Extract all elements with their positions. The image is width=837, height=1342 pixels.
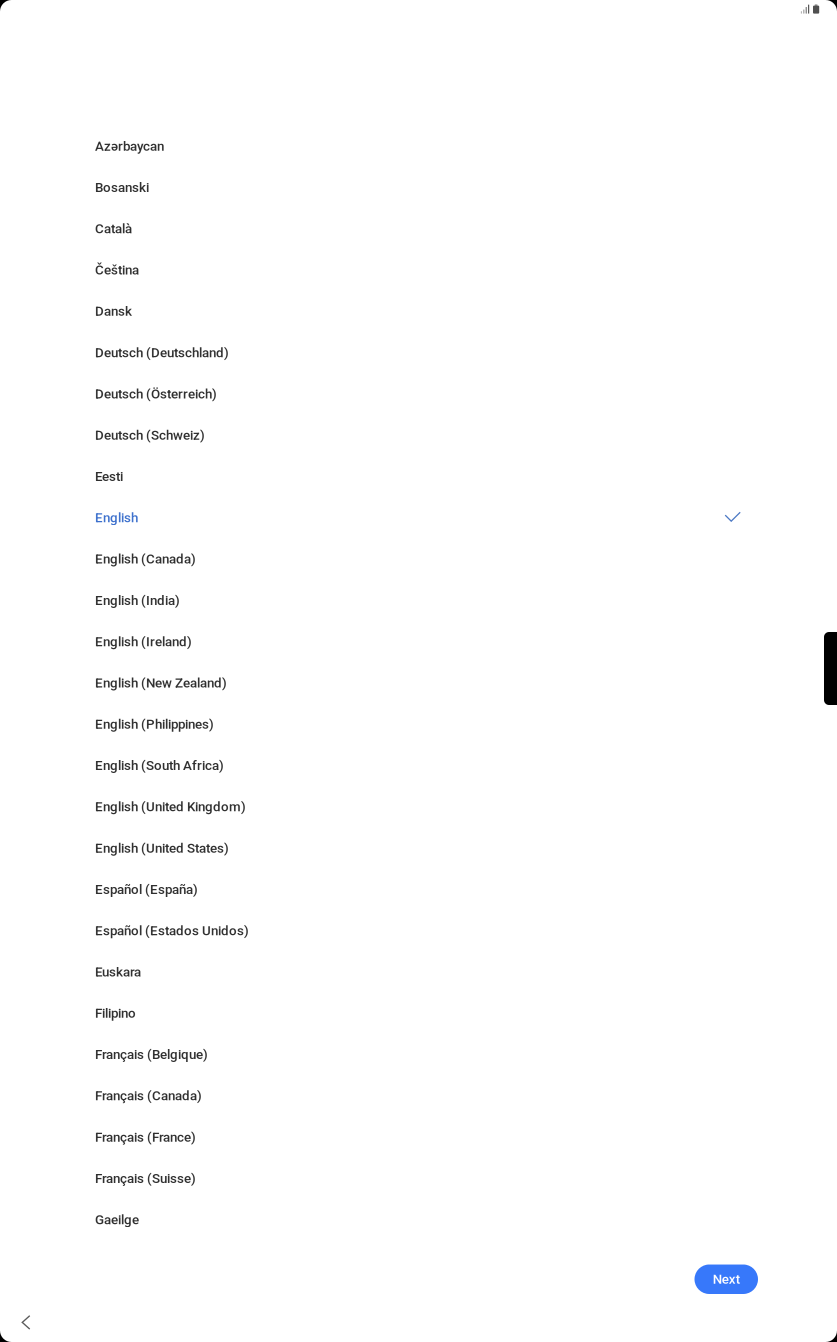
staticText: English (India) <box>95 592 180 608</box>
button[interactable]: Čeština <box>0 249 837 291</box>
button[interactable]: Español (Estados Unidos) <box>0 910 837 951</box>
button[interactable]: Euskara <box>0 951 837 993</box>
button[interactable]: Back <box>11 1308 41 1338</box>
staticText: Deutsch (Deutschland) <box>95 345 229 360</box>
staticText: Español (Estados Unidos) <box>95 923 249 938</box>
button[interactable]: Gaeilge <box>0 1199 837 1240</box>
button[interactable]: Eesti <box>0 456 837 497</box>
button[interactable]: English (South Africa) <box>0 745 837 786</box>
button[interactable]: Next <box>694 1264 758 1294</box>
button[interactable]: Dansk <box>0 291 837 332</box>
button[interactable]: Deutsch (Österreich) <box>0 373 837 414</box>
staticText: English (Philippines) <box>95 716 214 732</box>
staticText: Français (Canada) <box>95 1088 202 1104</box>
button[interactable]: Français (Belgique) <box>0 1034 837 1075</box>
button[interactable]: English (Canada) <box>0 538 837 580</box>
button[interactable]: Deutsch (Deutschland) <box>0 332 837 373</box>
button[interactable]: English (India) <box>0 580 837 621</box>
staticText: English (Ireland) <box>95 634 192 649</box>
staticText: Gaeilge <box>95 1212 139 1227</box>
staticText: English <box>95 510 138 525</box>
button[interactable]: English (Philippines) <box>0 704 837 745</box>
staticText: Euskara <box>95 964 141 980</box>
staticText: Filipino <box>95 1005 136 1021</box>
staticText: Čeština <box>95 262 139 278</box>
button[interactable]: English <box>0 497 837 538</box>
staticText: Eesti <box>95 469 123 484</box>
button[interactable]: English (United Kingdom) <box>0 786 837 827</box>
staticText: Bosanski <box>95 180 149 195</box>
button[interactable]: English (Ireland) <box>0 621 837 662</box>
button[interactable]: Français (Canada) <box>0 1075 837 1116</box>
button[interactable]: Azərbaycan <box>0 125 837 167</box>
staticText: English (United Kingdom) <box>95 799 246 815</box>
staticText: Français (Suisse) <box>95 1171 196 1186</box>
button[interactable]: Bosanski <box>0 167 837 208</box>
staticText: Français (France) <box>95 1129 196 1145</box>
button[interactable]: Français (Suisse) <box>0 1158 837 1199</box>
staticText: Deutsch (Schweiz) <box>95 427 205 443</box>
staticText: Deutsch (Österreich) <box>95 386 217 402</box>
button[interactable]: English (New Zealand) <box>0 662 837 704</box>
staticText: Català <box>95 221 132 236</box>
staticText: English (South Africa) <box>95 758 224 773</box>
button[interactable]: English (United States) <box>0 827 837 869</box>
button[interactable]: Filipino <box>0 993 837 1034</box>
staticText: Español (España) <box>95 882 198 897</box>
button[interactable]: Français (France) <box>0 1116 837 1158</box>
staticText: English (Canada) <box>95 551 196 567</box>
staticText: English (New Zealand) <box>95 675 227 691</box>
staticText: English (United States) <box>95 840 229 856</box>
staticText: Next <box>713 1271 740 1287</box>
staticText: Azərbaycan <box>95 138 164 154</box>
button[interactable]: Deutsch (Schweiz) <box>0 414 837 456</box>
staticText: Français (Belgique) <box>95 1047 208 1062</box>
staticText: Dansk <box>95 303 132 319</box>
button[interactable]: Español (España) <box>0 869 837 910</box>
button[interactable]: Català <box>0 208 837 249</box>
